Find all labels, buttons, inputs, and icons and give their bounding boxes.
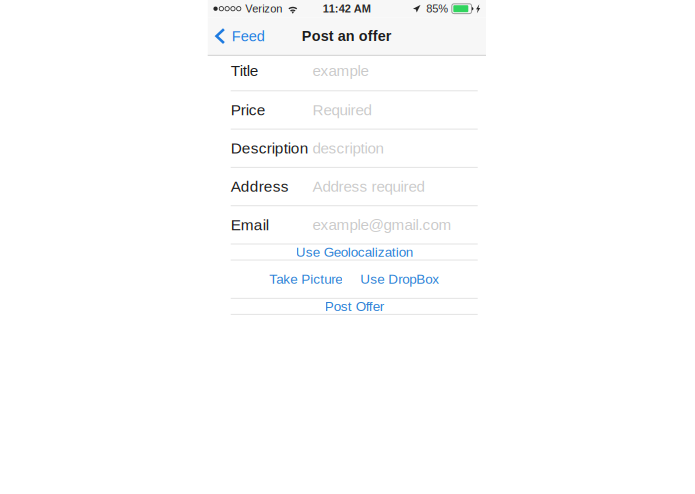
staticText: Use DropBox (360, 272, 439, 287)
staticText: Description (231, 140, 309, 157)
button[interactable]: Use Geolocalization (231, 244, 478, 259)
staticText: 85% (426, 2, 448, 15)
staticText: description (312, 140, 383, 157)
staticText: Post an offer (302, 28, 392, 44)
button[interactable]: Feed (208, 17, 272, 55)
staticText: Address (231, 178, 289, 195)
staticText: Email (231, 216, 269, 233)
staticText: Post Offer (325, 299, 384, 314)
button[interactable]: Take Picture (269, 260, 342, 298)
staticText: Verizon (245, 2, 282, 15)
button[interactable]: Post Offer (231, 299, 478, 314)
staticText: Price (231, 101, 266, 118)
staticText: Title (231, 62, 259, 79)
staticText: Required (312, 101, 371, 118)
staticText: example (312, 62, 368, 79)
staticText: Take Picture (269, 272, 342, 287)
staticText: Use Geolocalization (296, 244, 413, 259)
staticText: example@gmail.com (312, 216, 451, 233)
button[interactable]: Use DropBox (360, 260, 439, 298)
staticText: Address required (312, 178, 424, 195)
staticText: Feed (232, 28, 265, 44)
staticText: 11:42 AM (323, 2, 371, 15)
